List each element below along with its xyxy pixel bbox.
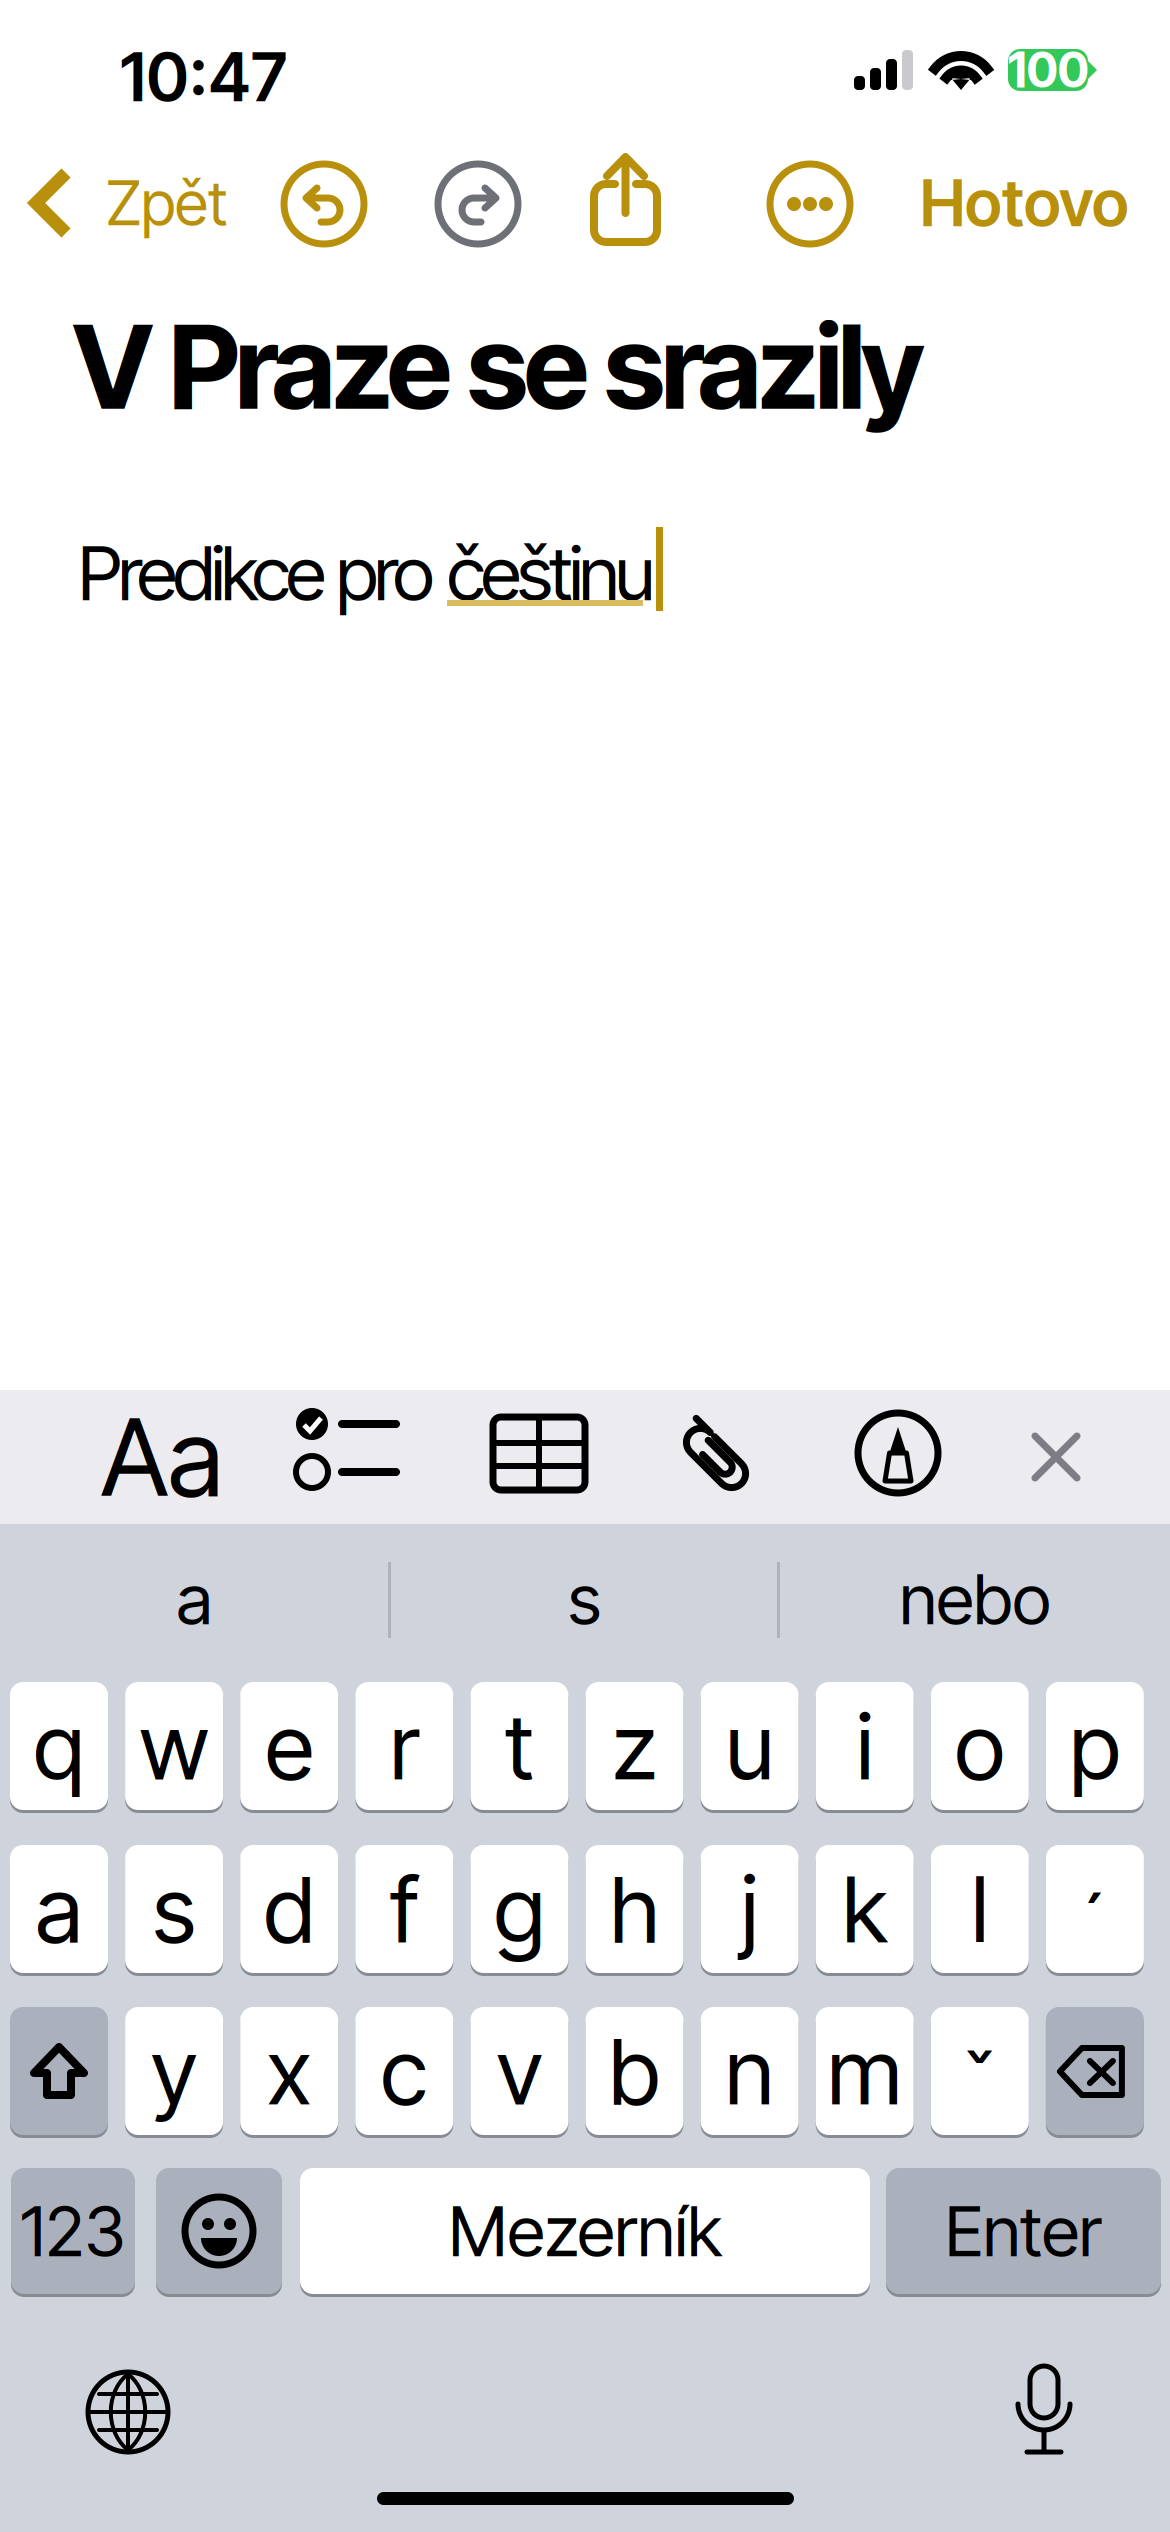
staticText: Mezerník (448, 2189, 721, 2273)
button[interactable]: r (355, 1682, 453, 1810)
button[interactable]: s (125, 1845, 223, 1973)
staticText: d (264, 1854, 315, 1964)
staticText: ´ (1079, 1875, 1110, 1971)
staticText: i (856, 1691, 873, 1801)
staticText: g (494, 1854, 545, 1964)
staticText: y (151, 2016, 197, 2126)
button[interactable]: Checklist (296, 1408, 400, 1506)
button[interactable]: t (470, 1682, 568, 1810)
button[interactable]: j (701, 1845, 799, 1973)
button[interactable]: Dictation (1008, 2366, 1080, 2458)
button[interactable]: f (355, 1845, 453, 1973)
staticText: 100 (1007, 41, 1088, 99)
button[interactable]: h (585, 1845, 683, 1973)
button[interactable]: Close keyboard (1031, 1432, 1081, 1482)
staticText: a (35, 1854, 82, 1964)
button[interactable]: ´ (1046, 1845, 1144, 1973)
button[interactable]: s (391, 1545, 778, 1653)
button[interactable]: b (585, 2007, 683, 2135)
staticText: u (726, 1691, 774, 1801)
staticText: z (612, 1691, 657, 1801)
button[interactable]: i (816, 1682, 914, 1810)
staticText: nebo (899, 1557, 1050, 1641)
staticText: s (153, 1854, 196, 1964)
staticText: e (265, 1691, 313, 1801)
button[interactable]: Hotovo (912, 158, 1136, 248)
button[interactable]: u (701, 1682, 799, 1810)
staticText: ˇ (963, 2035, 996, 2131)
staticText: c (381, 2016, 428, 2126)
staticText: s (568, 1557, 601, 1641)
staticText: x (267, 2016, 312, 2126)
staticText: n (725, 2016, 774, 2126)
staticText: 10:47 (120, 37, 287, 117)
button[interactable]: Enter (886, 2168, 1161, 2294)
button[interactable]: x (240, 2007, 338, 2135)
staticText: V Praze se srazily (72, 298, 924, 436)
button[interactable]: g (470, 1845, 568, 1973)
button[interactable]: l (931, 1845, 1029, 1973)
button[interactable]: Shift (10, 2007, 108, 2135)
staticText: Enter (945, 2189, 1102, 2273)
button[interactable]: q (10, 1682, 108, 1810)
button[interactable]: v (470, 2007, 568, 2135)
button[interactable]: 123 (11, 2168, 135, 2294)
button[interactable]: k (816, 1845, 914, 1973)
button[interactable]: More (770, 164, 850, 244)
button[interactable]: a (10, 1845, 108, 1973)
button[interactable]: m (816, 2007, 914, 2135)
staticText: k (842, 1854, 887, 1964)
staticText: h (610, 1854, 659, 1964)
staticText: j (741, 1854, 758, 1964)
button[interactable]: ˇ (931, 2007, 1029, 2135)
button[interactable]: Share (588, 150, 672, 254)
button[interactable]: Markup (858, 1413, 938, 1493)
button[interactable]: w (125, 1682, 223, 1810)
staticText: Zpět (106, 166, 227, 240)
staticText: 123 (20, 2189, 125, 2273)
button[interactable]: a (0, 1545, 389, 1653)
staticText: p (1069, 1691, 1120, 1801)
button[interactable]: c (355, 2007, 453, 2135)
button[interactable]: Attach (683, 1410, 757, 1496)
staticText: f (390, 1854, 418, 1964)
staticText: l (971, 1854, 988, 1964)
button[interactable]: Delete (1046, 2007, 1144, 2135)
staticText: b (609, 2016, 660, 2126)
button[interactable]: p (1046, 1682, 1144, 1810)
staticText: t (505, 1691, 534, 1801)
staticText: w (140, 1691, 209, 1801)
staticText: v (496, 2016, 542, 2126)
button[interactable]: e (240, 1682, 338, 1810)
staticText: Aa (101, 1392, 223, 1522)
button[interactable]: Mezerník (300, 2168, 870, 2294)
staticText: češtinu (447, 528, 655, 618)
button[interactable]: Next keyboard (88, 2372, 168, 2452)
button[interactable]: Zpět (14, 158, 246, 248)
button[interactable]: z (585, 1682, 683, 1810)
button[interactable]: y (125, 2007, 223, 2135)
staticText: r (390, 1691, 419, 1801)
button[interactable]: Undo (284, 164, 364, 244)
button[interactable]: o (931, 1682, 1029, 1810)
staticText: m (827, 2016, 902, 2126)
staticText: Predikce pro (78, 528, 434, 618)
staticText: Hotovo (920, 164, 1129, 242)
button[interactable]: d (240, 1845, 338, 1973)
staticText: a (176, 1557, 212, 1641)
staticText: q (33, 1691, 84, 1801)
button[interactable]: Format (92, 1392, 232, 1522)
staticText: o (955, 1691, 1005, 1801)
button[interactable]: Emoji (156, 2168, 282, 2294)
button[interactable]: n (701, 2007, 799, 2135)
button[interactable]: Table (493, 1417, 585, 1490)
button[interactable]: nebo (780, 1545, 1170, 1653)
button[interactable]: Redo (438, 164, 518, 244)
